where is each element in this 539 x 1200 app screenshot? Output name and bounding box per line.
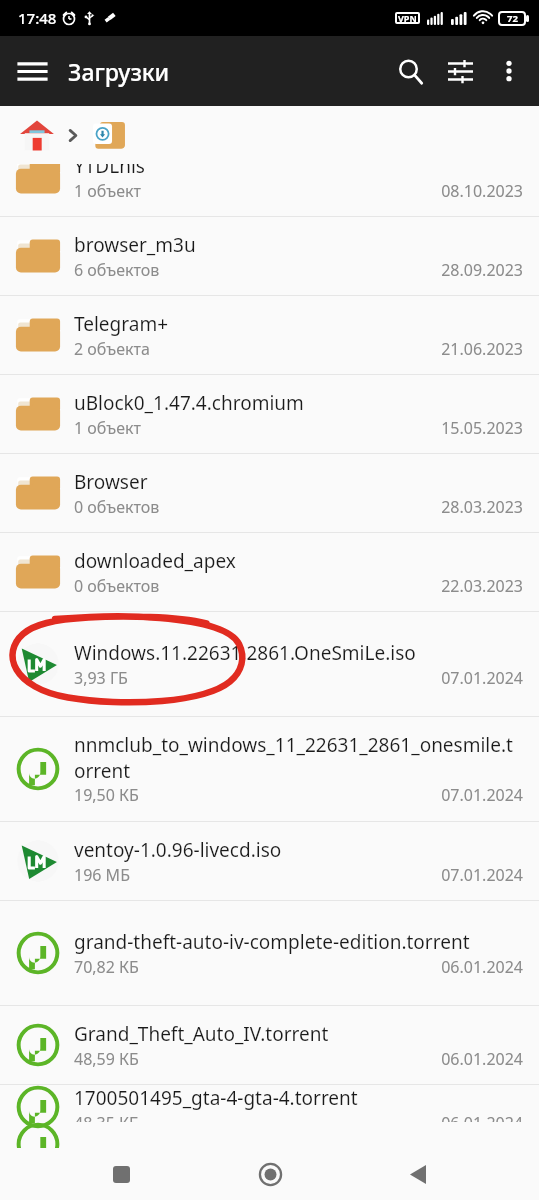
button[interactable]: nnmclub_to_windows_11_22631_2861_onesmil… [0, 717, 539, 821]
staticText: 1700501495_gta-4-gta-4.torrent [74, 1085, 358, 1111]
staticText: nnmclub_to_windows_11_22631_2861_onesmil… [74, 732, 523, 783]
staticText: 06.01.2024 [441, 956, 523, 978]
button[interactable]: More options [485, 47, 533, 95]
button[interactable]: 1700501495_gta-4-gta-4.torrent [0, 1085, 539, 1122]
staticText: 3,93 ГБ [74, 667, 128, 689]
staticText: 07.01.2024 [441, 864, 523, 886]
button[interactable]: uBlock0_1.47.4.chromium [0, 375, 539, 453]
staticText: grand-theft-auto-iv-complete-edition.tor… [74, 929, 470, 955]
staticText: Telegram+ [74, 311, 169, 337]
staticText: browser_m3u [74, 232, 196, 258]
staticText: 22.03.2023 [441, 575, 523, 597]
button[interactable]: Sort and filter [435, 46, 485, 96]
staticText: 48,35 КБ [74, 1112, 139, 1122]
button[interactable]: downloaded_apex [0, 533, 539, 611]
staticText: Grand_Theft_Auto_IV.torrent [74, 1021, 329, 1047]
staticText: 1 объект [74, 417, 141, 439]
staticText: Windows.11.22631.2861.OneSmiLe.iso [74, 640, 416, 666]
staticText: VPN [398, 12, 417, 24]
staticText: 07.01.2024 [441, 667, 523, 689]
staticText: 28.03.2023 [441, 496, 523, 518]
staticText: 1 объект [74, 180, 141, 202]
staticText: 0 объектов [74, 575, 160, 597]
button[interactable]: Open navigation drawer [8, 47, 56, 95]
button[interactable]: Windows.11.22631.2861.OneSmiLe.iso [0, 612, 539, 716]
staticText: 21.06.2023 [441, 338, 523, 360]
button[interactable]: Telegram+ [0, 296, 539, 374]
staticText: Загрузки [68, 56, 170, 87]
button[interactable]: browser_m3u [0, 217, 539, 295]
staticText: 28.09.2023 [441, 259, 523, 281]
staticText: YTDLnis [74, 164, 145, 179]
button[interactable]: Search [385, 46, 435, 96]
staticText: 196 МБ [74, 864, 130, 886]
staticText: 72 [507, 12, 518, 25]
staticText: 17:48 [18, 8, 57, 28]
button[interactable]: YTDLnis [0, 164, 539, 216]
staticText: uBlock0_1.47.4.chromium [74, 390, 304, 416]
staticText: Browser [74, 469, 148, 495]
staticText: 08.10.2023 [441, 180, 523, 202]
button[interactable]: Recent apps [93, 1148, 149, 1200]
staticText: 06.01.2024 [441, 1048, 523, 1070]
button[interactable]: Browser [0, 454, 539, 532]
staticText: 6 объектов [74, 259, 160, 281]
staticText: 19,50 КБ [74, 784, 139, 806]
button[interactable]: grand-theft-auto-iv-complete-edition.tor… [0, 901, 539, 1005]
staticText: 15.05.2023 [441, 417, 523, 439]
staticText: 48,59 КБ [74, 1048, 139, 1070]
staticText: 0 объектов [74, 496, 160, 518]
staticText: 70,82 КБ [74, 956, 139, 978]
staticText: 07.01.2024 [441, 784, 523, 806]
staticText: ventoy-1.0.96-livecd.iso [74, 837, 282, 863]
button[interactable]: Back [390, 1148, 446, 1200]
button[interactable]: Home [242, 1148, 298, 1200]
button[interactable]: ventoy-1.0.96-livecd.iso [0, 822, 539, 900]
button[interactable]: Grand_Theft_Auto_IV.torrent [0, 1006, 539, 1084]
staticText: downloaded_apex [74, 548, 236, 574]
button[interactable]: Downloads folder [85, 111, 133, 159]
staticText: 06.01.2024 [441, 1112, 523, 1122]
staticText: 2 объекта [74, 338, 150, 360]
button[interactable]: Home [14, 112, 60, 158]
